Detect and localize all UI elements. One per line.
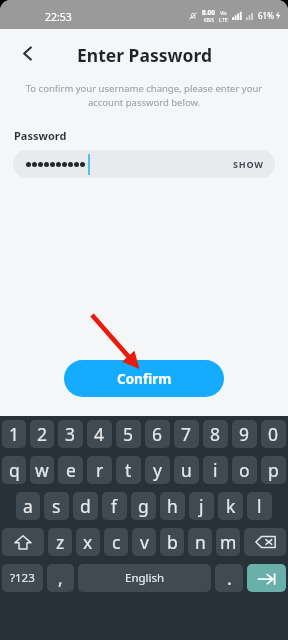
button[interactable]: 9	[232, 420, 257, 448]
staticText: v	[140, 530, 149, 554]
button[interactable]: u	[174, 456, 199, 484]
button[interactable]: English	[78, 564, 211, 592]
staticText: k	[226, 494, 236, 518]
staticText: r	[96, 458, 104, 482]
button[interactable]: 3	[58, 420, 83, 448]
staticText: o	[239, 458, 250, 482]
staticText: e	[66, 458, 76, 482]
button[interactable]: g	[131, 492, 156, 520]
button[interactable]: r	[87, 456, 112, 484]
button[interactable]: y	[145, 456, 170, 484]
staticText: 4	[94, 422, 105, 446]
button[interactable]: k	[218, 492, 243, 520]
staticText: To confirm your username change, please …	[12, 82, 276, 108]
staticText: p	[268, 458, 279, 482]
button[interactable]: SHOW	[13, 150, 275, 178]
staticText: w	[35, 458, 49, 482]
staticText: a	[23, 494, 33, 518]
staticText: .	[227, 566, 232, 590]
button[interactable]: Shift	[2, 528, 44, 556]
staticText: n	[195, 530, 206, 554]
button[interactable]: Backspace	[244, 528, 286, 556]
button[interactable]: s	[44, 492, 69, 520]
button[interactable]: ?123	[2, 564, 43, 592]
button[interactable]: 2	[30, 420, 54, 448]
staticText: 8.00	[202, 8, 215, 17]
staticText: q	[9, 458, 20, 482]
staticText: Vo	[220, 9, 227, 16]
staticText: KB/S	[204, 17, 214, 23]
staticText: LTE	[219, 16, 228, 23]
button[interactable]: z	[48, 528, 72, 556]
staticText: 8	[210, 422, 221, 446]
staticText: x	[83, 530, 93, 554]
staticText: Enter Password	[77, 43, 212, 67]
other: Backspace	[255, 535, 276, 549]
staticText: u	[181, 458, 192, 482]
staticText: 1	[9, 422, 20, 446]
button[interactable]: 5	[116, 420, 141, 448]
staticText: 3	[65, 422, 76, 446]
button[interactable]: 8	[203, 420, 228, 448]
button[interactable]: ,	[47, 564, 74, 592]
staticText: f	[111, 494, 118, 518]
button[interactable]: w	[30, 456, 54, 484]
staticText: s	[52, 494, 61, 518]
button[interactable]: b	[160, 528, 184, 556]
button[interactable]: 6	[145, 420, 170, 448]
button[interactable]: i	[203, 456, 228, 484]
button[interactable]: 0	[261, 420, 286, 448]
staticText: 2	[37, 422, 48, 446]
button[interactable]: x	[76, 528, 100, 556]
button[interactable]: m	[216, 528, 240, 556]
staticText: 6	[152, 422, 163, 446]
staticText: c	[112, 530, 121, 554]
button[interactable]: e	[58, 456, 83, 484]
other: Shift	[14, 534, 32, 551]
button[interactable]: j	[189, 492, 214, 520]
button[interactable]: 1	[2, 420, 26, 448]
staticText: 9	[239, 422, 250, 446]
staticText: 61%	[258, 10, 274, 21]
staticText: j	[199, 494, 204, 518]
button[interactable]: Confirm	[64, 360, 224, 397]
staticText: l	[257, 494, 262, 518]
button[interactable]: f	[102, 492, 127, 520]
staticText: h	[167, 494, 178, 518]
staticText: g	[138, 494, 149, 518]
button[interactable]: 4	[87, 420, 112, 448]
staticText: d	[80, 494, 91, 518]
button[interactable]: v	[132, 528, 156, 556]
button[interactable]: l	[247, 492, 272, 520]
button[interactable]: q	[2, 456, 26, 484]
staticText: Password	[14, 128, 67, 143]
staticText: 22:53	[45, 10, 72, 24]
button[interactable]: .	[215, 564, 243, 592]
staticText: 7	[181, 422, 192, 446]
button[interactable]: Back	[12, 38, 42, 68]
staticText: Confirm	[117, 370, 172, 388]
button[interactable]: t	[116, 456, 141, 484]
staticText: z	[56, 530, 65, 554]
button[interactable]: a	[16, 492, 40, 520]
button[interactable]: c	[104, 528, 128, 556]
staticText: t	[125, 458, 132, 482]
button[interactable]: o	[232, 456, 257, 484]
other: Enter	[257, 571, 277, 585]
staticText: y	[153, 458, 162, 482]
button[interactable]: h	[160, 492, 185, 520]
staticText: b	[167, 530, 178, 554]
button[interactable]: n	[188, 528, 212, 556]
button[interactable]: Enter	[247, 564, 286, 592]
staticText: 5	[123, 422, 134, 446]
button[interactable]: d	[73, 492, 98, 520]
button[interactable]: p	[261, 456, 286, 484]
staticText: ,	[58, 566, 63, 590]
staticText: 0	[268, 422, 279, 446]
staticText: ?123	[10, 570, 35, 586]
button[interactable]: 7	[174, 420, 199, 448]
staticText: m	[220, 530, 237, 554]
staticText: SHOW	[233, 158, 264, 170]
staticText: English	[125, 570, 165, 586]
staticText: i	[213, 458, 218, 482]
